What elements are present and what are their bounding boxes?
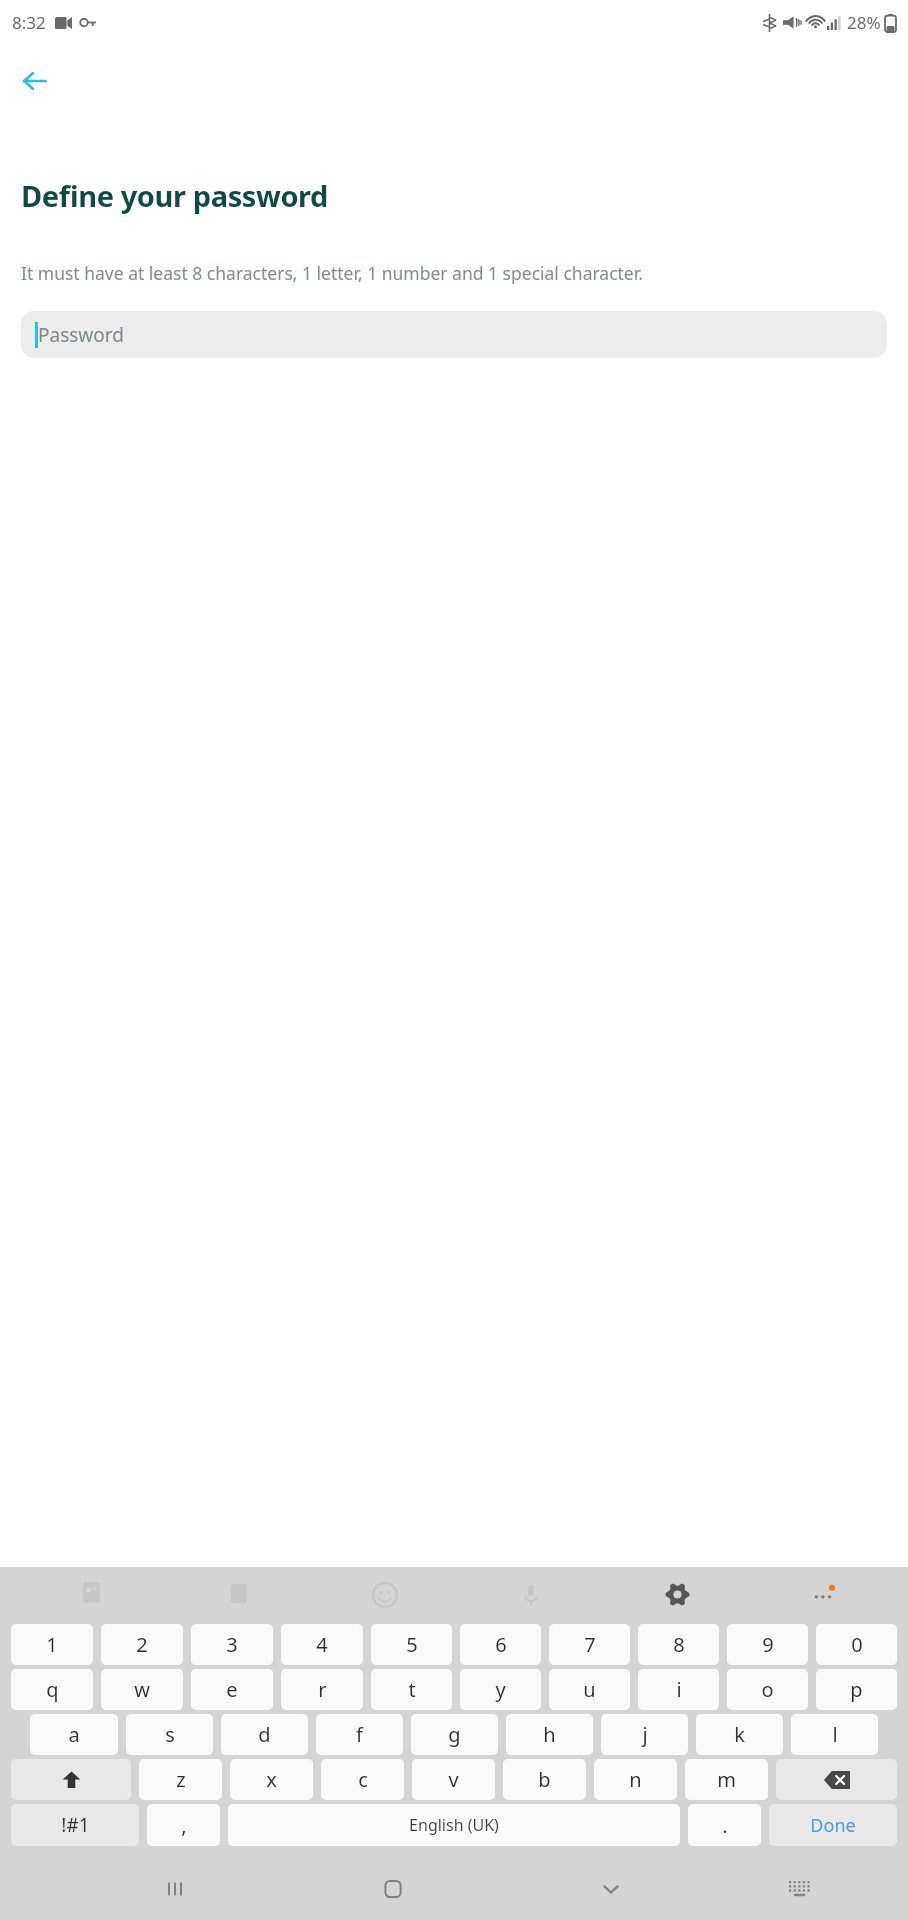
staticText: r: [318, 1676, 327, 1703]
button[interactable]: n: [594, 1759, 677, 1800]
button[interactable]: More options: [750, 1567, 896, 1622]
button[interactable]: Back: [11, 57, 59, 105]
button[interactable]: 9: [727, 1624, 808, 1665]
staticText: z: [176, 1766, 186, 1793]
staticText: f: [356, 1721, 363, 1748]
button[interactable]: 5: [371, 1624, 452, 1665]
button[interactable]: b: [503, 1759, 586, 1800]
staticText: 8:32: [12, 11, 46, 34]
staticText: Done: [810, 1813, 856, 1838]
staticText: Define your password: [21, 176, 329, 215]
staticText: q: [46, 1676, 59, 1703]
staticText: l: [832, 1721, 838, 1748]
staticText: 0: [851, 1631, 863, 1658]
staticText: s: [165, 1721, 175, 1748]
button[interactable]: u: [549, 1669, 630, 1710]
button[interactable]: Home: [320, 1857, 465, 1920]
button[interactable]: 1: [11, 1624, 93, 1665]
button[interactable]: z: [139, 1759, 222, 1800]
button[interactable]: Settings: [604, 1567, 750, 1622]
button[interactable]: Password: [21, 311, 887, 358]
staticText: e: [226, 1676, 238, 1703]
button[interactable]: q: [11, 1669, 93, 1710]
button[interactable]: f: [316, 1714, 403, 1755]
staticText: 3: [226, 1631, 238, 1658]
button[interactable]: c: [321, 1759, 404, 1800]
button[interactable]: p: [816, 1669, 897, 1710]
button[interactable]: d: [221, 1714, 308, 1755]
button[interactable]: .: [688, 1804, 761, 1846]
staticText: x: [266, 1766, 277, 1793]
staticText: i: [676, 1676, 682, 1703]
staticText: g: [448, 1721, 461, 1748]
staticText: d: [258, 1721, 271, 1748]
button[interactable]: Change keyboard: [727, 1857, 872, 1920]
button[interactable]: k: [696, 1714, 783, 1755]
button[interactable]: 8: [638, 1624, 719, 1665]
button[interactable]: 3: [191, 1624, 273, 1665]
button[interactable]: g: [411, 1714, 498, 1755]
staticText: t: [408, 1676, 416, 1703]
staticText: 9: [762, 1631, 774, 1658]
staticText: n: [629, 1766, 642, 1793]
staticText: b: [538, 1766, 551, 1793]
button[interactable]: y: [460, 1669, 541, 1710]
staticText: h: [543, 1721, 556, 1748]
staticText: v: [448, 1766, 459, 1793]
button[interactable]: x: [230, 1759, 313, 1800]
staticText: 8: [673, 1631, 685, 1658]
staticText: ,: [181, 1812, 187, 1839]
button[interactable]: o: [727, 1669, 808, 1710]
button[interactable]: j: [601, 1714, 688, 1755]
button[interactable]: 0: [816, 1624, 897, 1665]
staticText: 2: [136, 1631, 148, 1658]
staticText: Password: [38, 322, 124, 348]
staticText: .: [722, 1812, 728, 1839]
staticText: 28%: [847, 11, 881, 34]
button[interactable]: Recent apps: [102, 1857, 247, 1920]
staticText: 1: [46, 1631, 58, 1658]
button[interactable]: 7: [549, 1624, 630, 1665]
staticText: a: [68, 1721, 80, 1748]
button[interactable]: m: [685, 1759, 768, 1800]
button[interactable]: h: [506, 1714, 593, 1755]
staticText: j: [642, 1721, 648, 1748]
button[interactable]: Hide keyboard: [538, 1857, 683, 1920]
button[interactable]: 4: [281, 1624, 363, 1665]
staticText: 6: [495, 1631, 507, 1658]
button[interactable]: s: [126, 1714, 213, 1755]
button[interactable]: 2: [101, 1624, 183, 1665]
button[interactable]: e: [191, 1669, 273, 1710]
staticText: m: [717, 1766, 736, 1793]
staticText: English (UK): [409, 1814, 499, 1836]
button[interactable]: Done: [769, 1804, 897, 1846]
button[interactable]: ,: [147, 1804, 220, 1846]
button[interactable]: w: [101, 1669, 183, 1710]
staticText: w: [134, 1676, 150, 1703]
button[interactable]: l: [791, 1714, 878, 1755]
staticText: c: [358, 1766, 368, 1793]
staticText: y: [495, 1676, 506, 1703]
button[interactable]: !#1: [11, 1804, 139, 1846]
staticText: !#1: [61, 1812, 90, 1838]
staticText: u: [583, 1676, 596, 1703]
button[interactable]: r: [281, 1669, 363, 1710]
button[interactable]: Backspace: [776, 1759, 897, 1800]
button[interactable]: a: [30, 1714, 118, 1755]
button[interactable]: English (UK): [228, 1804, 680, 1846]
button[interactable]: v: [412, 1759, 495, 1800]
button[interactable]: Shift: [11, 1759, 131, 1800]
button[interactable]: i: [638, 1669, 719, 1710]
staticText: 5: [406, 1631, 418, 1658]
staticText: o: [761, 1676, 774, 1703]
staticText: 4: [316, 1631, 328, 1658]
staticText: It must have at least 8 characters, 1 le…: [21, 261, 643, 285]
button[interactable]: t: [371, 1669, 452, 1710]
button[interactable]: 6: [460, 1624, 541, 1665]
staticText: p: [850, 1676, 863, 1703]
staticText: k: [734, 1721, 745, 1748]
